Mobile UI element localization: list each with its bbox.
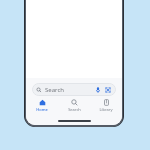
staticText: Library (99, 107, 113, 112)
button[interactable]: Voice search (94, 86, 102, 94)
button[interactable]: Library (90, 98, 122, 113)
button[interactable]: Google Lens (104, 86, 112, 94)
staticText: Search (45, 86, 64, 94)
button[interactable]: Search (58, 98, 90, 113)
staticText: Search (68, 107, 81, 112)
button[interactable]: Search (32, 83, 116, 96)
button[interactable]: Home (26, 98, 58, 113)
staticText: Home (36, 107, 48, 112)
